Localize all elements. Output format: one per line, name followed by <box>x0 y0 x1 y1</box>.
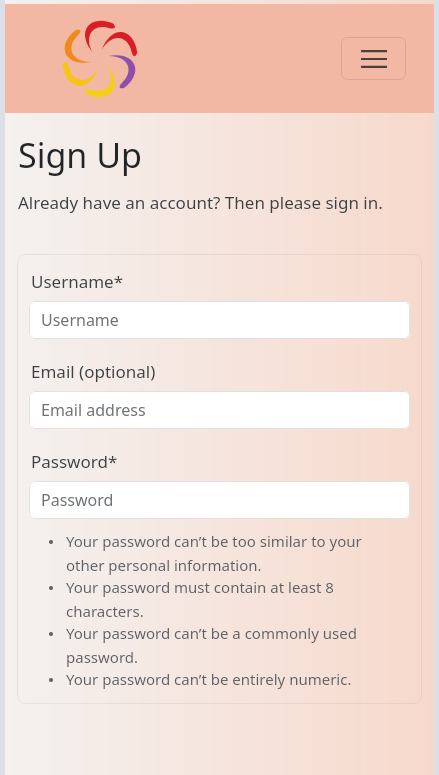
button[interactable]: Email address <box>29 391 410 429</box>
staticText: Sign Up <box>18 132 142 178</box>
staticText: Password <box>41 489 114 511</box>
staticText: Username* <box>31 270 124 293</box>
staticText: Email address <box>41 399 146 421</box>
staticText: Your password can’t be too similar to yo… <box>66 531 404 575</box>
staticText: Your password can’t be a commonly used p… <box>66 623 404 667</box>
button[interactable]: Toggle navigation menu <box>341 37 406 80</box>
staticText: Your password can’t be entirely numeric. <box>66 669 352 689</box>
staticText: Your password must contain at least 8 ch… <box>66 577 404 621</box>
button[interactable]: Username <box>29 301 410 339</box>
button[interactable]: Password <box>29 481 410 519</box>
button[interactable]: Home logo <box>60 19 140 99</box>
staticText: Email (optional) <box>31 360 156 383</box>
staticText: Already have an account? Then please sig… <box>18 191 383 214</box>
staticText: Password* <box>31 450 118 473</box>
staticText: Username <box>41 309 119 331</box>
